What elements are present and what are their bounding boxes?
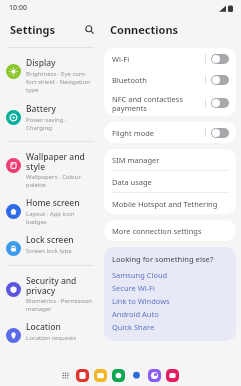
staticText: Security and privacy bbox=[26, 275, 77, 296]
button[interactable]: Wi-Fi bbox=[104, 48, 236, 69]
button[interactable]: Home screen bbox=[0, 195, 100, 228]
button[interactable]: Secure Wi-Fi bbox=[112, 281, 229, 294]
button[interactable]: Search bbox=[80, 20, 98, 38]
staticText: Home screen bbox=[26, 197, 80, 209]
staticText: Biometrics · Permission manager bbox=[26, 297, 93, 313]
staticText: Connections bbox=[110, 22, 179, 37]
button[interactable]: Toggle bbox=[211, 128, 229, 138]
staticText: Location requests bbox=[26, 334, 77, 342]
staticText: More connection settings bbox=[112, 226, 202, 236]
staticText: Location bbox=[26, 321, 61, 333]
staticText: Bluetooth bbox=[112, 75, 205, 85]
button[interactable]: Location bbox=[0, 319, 100, 345]
button[interactable]: Gallery bbox=[76, 369, 89, 382]
button[interactable]: Data usage bbox=[104, 171, 236, 193]
staticText: Display bbox=[26, 57, 56, 69]
button[interactable]: Bluetooth bbox=[104, 69, 236, 90]
button[interactable]: Security and privacy bbox=[0, 273, 100, 315]
staticText: Secure Wi-Fi bbox=[112, 283, 155, 293]
staticText: Samsung Cloud bbox=[112, 270, 168, 280]
staticText: Brightness · Eye com- fort shield · Navi… bbox=[26, 70, 91, 94]
staticText: Settings bbox=[10, 22, 56, 37]
staticText: Wallpaper and style bbox=[26, 151, 85, 172]
button[interactable]: Files bbox=[94, 369, 107, 382]
button[interactable]: Phone bbox=[112, 369, 125, 382]
button[interactable]: Toggle bbox=[211, 98, 229, 108]
button[interactable]: Messages bbox=[130, 369, 143, 382]
staticText: Wallpapers · Colour palette bbox=[26, 173, 81, 189]
button[interactable]: Apps bbox=[60, 370, 71, 381]
button[interactable]: Lock screen bbox=[0, 232, 100, 258]
button[interactable]: Display bbox=[0, 55, 100, 96]
button[interactable]: Mobile Hotspot and Tethering bbox=[104, 193, 236, 214]
staticText: Looking for something else? bbox=[112, 254, 214, 264]
staticText: Quick Share bbox=[112, 322, 155, 332]
staticText: Link to Windows bbox=[112, 296, 170, 306]
staticText: NFC and contactless payments bbox=[112, 94, 205, 113]
staticText: Data usage bbox=[112, 177, 152, 187]
staticText: SIM manager bbox=[112, 155, 160, 165]
staticText: Android Auto bbox=[112, 309, 159, 319]
staticText: Screen lock type bbox=[26, 247, 72, 255]
button[interactable]: Quick Share bbox=[112, 320, 229, 333]
button[interactable]: Link to Windows bbox=[112, 294, 229, 307]
staticText: Wi-Fi bbox=[112, 54, 205, 64]
button[interactable]: Battery bbox=[0, 101, 100, 134]
button[interactable]: Flight mode bbox=[104, 122, 236, 143]
staticText: Battery bbox=[26, 103, 56, 115]
button[interactable]: Internet bbox=[148, 369, 161, 382]
staticText: Power saving · Charging bbox=[26, 116, 67, 132]
button[interactable]: Camera bbox=[166, 369, 179, 382]
button[interactable]: Toggle bbox=[211, 75, 229, 85]
button[interactable]: More connection settings bbox=[104, 220, 236, 241]
staticText: Flight mode bbox=[112, 128, 205, 138]
button[interactable]: NFC and contactless payments bbox=[104, 90, 236, 116]
staticText: Mobile Hotspot and Tethering bbox=[112, 199, 218, 209]
button[interactable]: Samsung Cloud bbox=[112, 268, 229, 281]
button[interactable]: Android Auto bbox=[112, 307, 229, 320]
staticText: Layout · App icon badges bbox=[26, 210, 75, 226]
staticText: Lock screen bbox=[26, 234, 74, 246]
staticText: 10:00 bbox=[9, 3, 27, 13]
button[interactable]: Toggle bbox=[211, 54, 229, 64]
button[interactable]: Wallpaper and style bbox=[0, 149, 100, 191]
button[interactable]: SIM manager bbox=[104, 149, 236, 171]
